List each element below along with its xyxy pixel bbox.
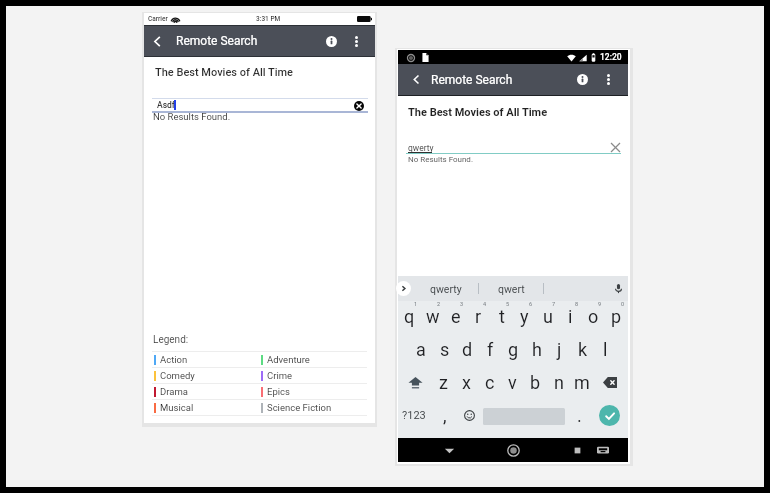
button[interactable]: 3 (444, 300, 467, 333)
button[interactable]: qwerty (413, 276, 478, 301)
staticText: w (426, 306, 440, 327)
staticText: y (520, 306, 529, 327)
staticText: Remote Search (176, 34, 258, 48)
staticText: q (404, 306, 415, 327)
staticText: j (557, 339, 562, 360)
button[interactable]: Epics (259, 384, 367, 399)
button[interactable]: z (432, 366, 455, 399)
staticText: z (439, 372, 448, 393)
button[interactable]: 9 (582, 300, 605, 333)
button[interactable]: Science Fiction (259, 400, 367, 415)
button[interactable]: Info (319, 26, 343, 56)
button[interactable]: c (478, 366, 501, 399)
button[interactable]: Recents (565, 438, 589, 462)
staticText: Crime (267, 370, 293, 381)
staticText: p (611, 306, 622, 327)
button[interactable]: Space (482, 408, 566, 425)
button[interactable]: More options (596, 64, 620, 95)
button[interactable]: 5 (490, 300, 513, 333)
button[interactable]: qwert (479, 276, 543, 301)
button[interactable]: n (547, 366, 570, 399)
button[interactable]: a (409, 333, 433, 366)
button[interactable]: Back (404, 64, 428, 95)
button[interactable]: x (455, 366, 478, 399)
button[interactable]: j (548, 333, 571, 366)
staticText: The Best Movies of All Time (408, 106, 548, 119)
staticText: 8 (575, 301, 579, 307)
button[interactable]: Back (146, 26, 168, 56)
button[interactable]: . (569, 399, 589, 432)
staticText: l (603, 339, 608, 360)
button[interactable]: 2 (421, 300, 444, 333)
staticText: , (443, 405, 447, 426)
button[interactable]: 4 (467, 300, 490, 333)
staticText: qwerty (408, 143, 434, 153)
staticText: f (487, 339, 494, 360)
staticText: i (568, 306, 573, 327)
button[interactable]: Musical (152, 400, 259, 415)
button[interactable]: Info (570, 64, 594, 95)
button[interactable]: 6 (513, 300, 536, 333)
button[interactable]: Adventure (259, 352, 367, 367)
button[interactable]: Emoji (458, 399, 480, 432)
staticText: qwert (498, 283, 525, 295)
button[interactable]: h (525, 333, 548, 366)
staticText: x (462, 372, 471, 393)
staticText: m (574, 372, 590, 393)
button[interactable]: Clear text (353, 100, 364, 111)
button[interactable]: More options (344, 26, 368, 56)
button[interactable]: k (571, 333, 594, 366)
button[interactable]: s (433, 333, 456, 366)
button[interactable]: Drama (152, 384, 259, 399)
button[interactable]: Expand suggestions (398, 276, 413, 301)
staticText: . (577, 405, 582, 426)
button[interactable]: 7 (536, 300, 559, 333)
button[interactable]: 1 (398, 300, 421, 333)
button[interactable]: 8 (559, 300, 582, 333)
staticText: r (475, 306, 482, 327)
button[interactable]: l (594, 333, 617, 366)
button[interactable]: Voice input (608, 276, 628, 301)
staticText: 9 (598, 301, 602, 307)
staticText: v (508, 372, 517, 393)
staticText: Carrier (148, 15, 168, 23)
button[interactable]: ?123 (400, 399, 428, 432)
staticText: 7 (552, 301, 556, 307)
button[interactable]: Home (501, 438, 525, 462)
staticText: k (578, 339, 588, 360)
staticText: Musical (160, 402, 194, 413)
button[interactable]: Shift (398, 366, 432, 399)
staticText: 1 (414, 301, 418, 307)
staticText: Remote Search (431, 73, 513, 87)
button[interactable]: Action (152, 352, 259, 367)
staticText: 5 (506, 301, 510, 307)
button[interactable]: Crime (259, 368, 367, 383)
staticText: Legend: (153, 334, 189, 346)
staticText: 12:20 (600, 52, 622, 62)
staticText: u (543, 306, 553, 327)
staticText: The Best Movies of All Time (155, 66, 294, 79)
button[interactable]: Back (437, 438, 461, 462)
staticText: Comedy (160, 370, 195, 381)
staticText: t (499, 306, 505, 327)
button[interactable]: m (570, 366, 593, 399)
staticText: Asdf (157, 100, 175, 110)
button[interactable]: Enter (590, 399, 628, 432)
staticText: b (530, 372, 541, 393)
button[interactable]: Backspace (593, 366, 628, 399)
staticText: 3:31 PM (256, 15, 281, 23)
button[interactable]: v (501, 366, 524, 399)
button[interactable]: g (502, 333, 525, 366)
button[interactable]: d (456, 333, 479, 366)
button[interactable]: b (524, 366, 547, 399)
staticText: Action (160, 354, 188, 365)
button[interactable]: Comedy (152, 368, 259, 383)
staticText: No Results Found. (408, 155, 473, 164)
staticText: a (416, 339, 426, 360)
button[interactable]: Keyboard (591, 438, 615, 462)
staticText: e (451, 306, 461, 327)
button[interactable]: f (479, 333, 502, 366)
button[interactable]: Clear text (609, 142, 621, 153)
button[interactable]: , (434, 399, 456, 432)
button[interactable]: 0 (605, 300, 628, 333)
